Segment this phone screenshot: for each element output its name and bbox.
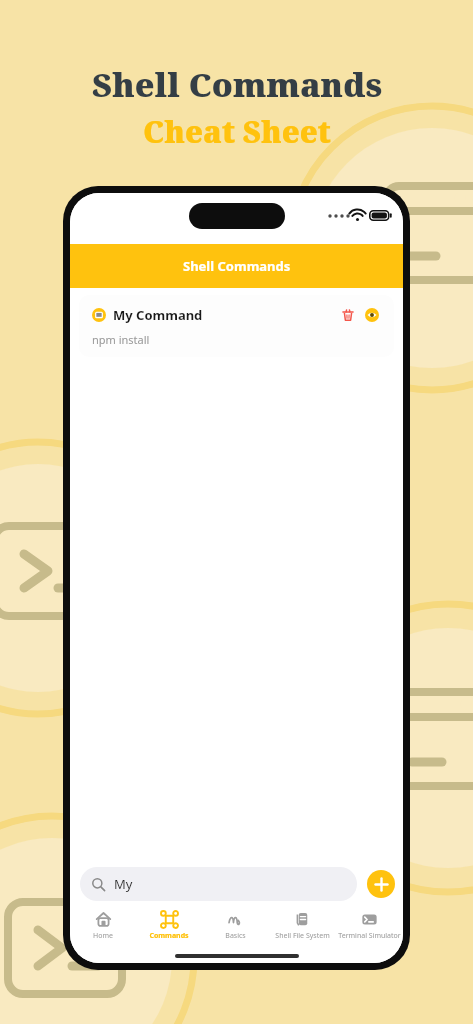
button[interactable]: Home	[70, 907, 136, 948]
button[interactable]: Commands	[136, 907, 202, 948]
staticText: Commands	[149, 931, 189, 941]
staticText: My	[114, 875, 133, 893]
staticText: Shell File System	[275, 931, 330, 941]
staticText: Terminal Simulator	[338, 931, 401, 941]
button[interactable]: My Command	[79, 295, 394, 357]
button[interactable]: Add command	[367, 870, 395, 898]
staticText: Shell Commands	[183, 257, 291, 275]
button[interactable]: Basics	[202, 907, 269, 948]
staticText: Basics	[225, 931, 246, 941]
button[interactable]: My	[80, 867, 357, 901]
button[interactable]: Shell File System	[269, 907, 336, 948]
staticText: My Command	[113, 306, 203, 324]
button[interactable]: View command	[362, 305, 381, 324]
button[interactable]: Terminal Simulator	[336, 907, 403, 948]
staticText: Home	[93, 931, 113, 941]
button[interactable]: Delete command	[338, 305, 357, 324]
staticText: Shell Commands	[92, 62, 382, 107]
staticText: npm install	[92, 332, 150, 347]
staticText: Cheat Sheet	[143, 111, 331, 152]
